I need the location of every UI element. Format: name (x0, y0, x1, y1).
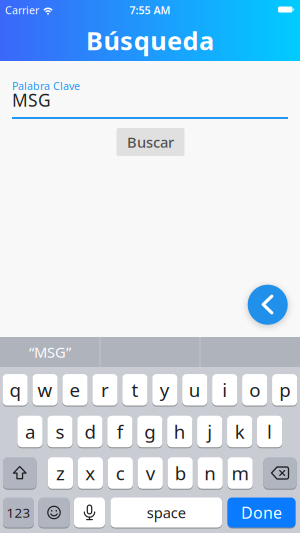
staticText: Buscar (127, 132, 174, 152)
staticText: w (37, 377, 52, 402)
staticText: 123 (6, 504, 30, 521)
staticText: g (144, 419, 155, 444)
button[interactable]: y (152, 374, 177, 406)
staticText: “MSG” (29, 342, 71, 362)
staticText: o (249, 377, 260, 402)
button[interactable] (248, 285, 288, 325)
button[interactable] (74, 497, 105, 528)
staticText: b (175, 461, 186, 485)
staticText: z (56, 461, 65, 485)
staticText: s (55, 419, 64, 444)
staticText: i (222, 377, 227, 402)
staticText: r (101, 377, 109, 402)
staticText: space (147, 503, 186, 522)
button[interactable]: e (62, 374, 88, 406)
button[interactable]: s (47, 415, 73, 448)
button[interactable]: n (198, 457, 223, 489)
staticText: u (189, 377, 201, 402)
button[interactable]: o (242, 374, 267, 406)
button[interactable]: u (182, 374, 207, 406)
button[interactable]: Done (227, 497, 295, 528)
button[interactable]: “MSG” (0, 337, 99, 367)
button[interactable] (38, 497, 69, 528)
staticText: l (267, 419, 272, 444)
staticText: k (235, 419, 245, 444)
button[interactable]: c (108, 457, 133, 489)
button[interactable] (263, 457, 296, 489)
button[interactable]: w (32, 374, 58, 406)
staticText: n (204, 461, 216, 485)
staticText: p (279, 377, 290, 402)
button[interactable]: d (77, 415, 102, 448)
staticText: MSG (12, 88, 51, 111)
staticText: m (232, 461, 249, 485)
staticText: 7:55 AM (129, 3, 170, 17)
staticText: e (69, 377, 80, 402)
button[interactable]: q (2, 374, 28, 406)
button[interactable]: a (17, 415, 43, 448)
button[interactable]: b (168, 457, 193, 489)
staticText: Carrier (5, 3, 39, 17)
button[interactable]: t (122, 374, 147, 406)
button[interactable]: p (272, 374, 297, 406)
staticText: y (160, 377, 170, 402)
button[interactable]: h (167, 415, 192, 448)
staticText: q (10, 377, 21, 402)
button[interactable]: Buscar (116, 128, 184, 156)
button[interactable]: 123 (3, 497, 34, 528)
button[interactable]: k (227, 415, 252, 448)
button[interactable]: g (137, 415, 162, 448)
staticText: Palabra Clave (12, 79, 80, 93)
button[interactable]: space (110, 497, 222, 528)
button[interactable]: f (107, 415, 132, 448)
staticText: v (146, 461, 155, 485)
button[interactable]: v (138, 457, 163, 489)
staticText: h (174, 419, 186, 444)
staticText: d (84, 419, 95, 444)
staticText: Búsqueda (86, 24, 214, 57)
button[interactable]: z (48, 457, 73, 489)
button[interactable]: r (92, 374, 117, 406)
staticText: c (116, 461, 125, 485)
button[interactable]: x (78, 457, 103, 489)
staticText: x (85, 461, 95, 485)
button[interactable]: i (212, 374, 237, 406)
staticText: f (117, 419, 123, 444)
staticText: a (25, 419, 35, 444)
staticText: j (207, 419, 212, 444)
button[interactable]: m (227, 457, 253, 489)
button[interactable]: MSG (0, 91, 300, 119)
button[interactable] (3, 457, 36, 489)
button[interactable]: j (197, 415, 222, 448)
staticText: Done (241, 502, 282, 523)
staticText: t (131, 377, 138, 402)
button[interactable]: l (257, 415, 282, 448)
